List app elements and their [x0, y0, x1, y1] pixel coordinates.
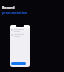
staticText: Record [2, 5, 15, 10]
button[interactable]: Record [11, 62, 26, 65]
staticText: pronunciation [2, 10, 28, 15]
